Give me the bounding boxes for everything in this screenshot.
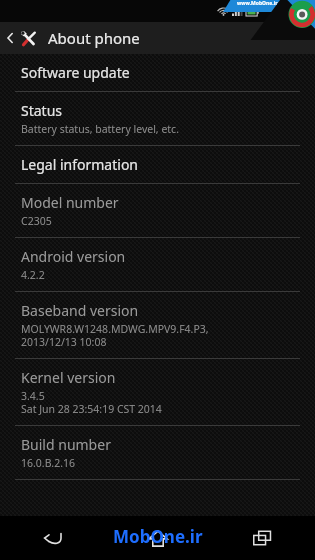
- staticText: Status: [21, 101, 63, 120]
- staticText: C2305: [21, 214, 52, 228]
- staticText: Android version: [21, 247, 126, 266]
- button[interactable]: Recent apps: [210, 516, 315, 560]
- staticText: About phone: [48, 28, 140, 48]
- button[interactable]: Baseband version: [0, 292, 315, 358]
- button[interactable]: Model number: [0, 184, 315, 237]
- staticText: www.MobOne.ir: [237, 0, 278, 7]
- staticText: 16.0.B.2.16: [21, 456, 76, 470]
- staticText: MobOne.ir: [113, 525, 203, 548]
- staticText: Legal information: [21, 155, 139, 174]
- button[interactable]: Home: [105, 516, 210, 560]
- staticText: Baseband version: [21, 301, 139, 320]
- button[interactable]: Android version: [0, 238, 315, 291]
- button[interactable]: Build number: [0, 426, 315, 479]
- staticText: Model number: [21, 193, 119, 212]
- button[interactable]: Software update: [0, 54, 315, 91]
- button[interactable]: Back: [0, 516, 105, 560]
- staticText: 3.4.5 Sat Jun 28 23:54:19 CST 2014: [21, 389, 162, 416]
- staticText: 4.2.2: [21, 268, 45, 282]
- staticText: MOLYWR8.W1248.MDWG.MPV9.F4.P3, 2013/12/1…: [21, 322, 209, 349]
- button[interactable]: Legal information: [0, 146, 315, 183]
- staticText: Battery status, battery level, etc.: [21, 122, 179, 136]
- staticText: Software update: [21, 63, 130, 82]
- button[interactable]: Up, About phone: [0, 22, 315, 54]
- staticText: Build number: [21, 435, 111, 454]
- staticText: Kernel version: [21, 368, 116, 387]
- button[interactable]: Status: [0, 92, 315, 145]
- button[interactable]: Kernel version: [0, 359, 315, 425]
